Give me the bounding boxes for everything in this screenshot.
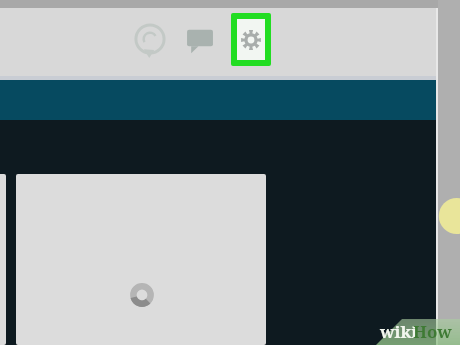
button[interactable]: Messages [182,22,218,58]
button[interactable] [16,174,266,345]
button[interactable]: Contacts [128,18,172,62]
staticText: wiki [380,320,418,343]
button[interactable]: Settings [231,13,271,66]
staticText: How [413,320,452,343]
